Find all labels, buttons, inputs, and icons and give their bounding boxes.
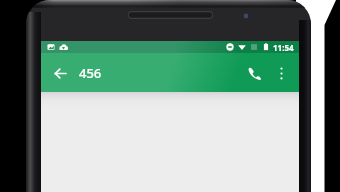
staticText: 456 — [79, 64, 102, 82]
button[interactable]: Navigate up — [47, 60, 73, 86]
staticText: 11:54 — [273, 42, 294, 53]
button[interactable]: Call — [240, 59, 268, 87]
button[interactable]: More options — [268, 60, 294, 86]
